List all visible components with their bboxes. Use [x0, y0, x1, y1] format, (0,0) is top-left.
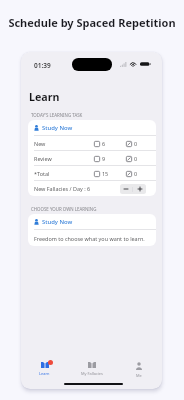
staticText: TODAY'S LEARNING TASK [31, 112, 83, 118]
button[interactable]: Decrease [120, 184, 132, 194]
staticText: My Fallacies [81, 371, 103, 376]
button[interactable]: My Fallacies [68, 358, 115, 380]
staticText: 0 [134, 155, 138, 162]
staticText: 0 [134, 170, 138, 177]
staticText: Schedule by Spaced Repetition [8, 15, 176, 30]
staticText: 01:39 [34, 61, 51, 70]
staticText: Study Now [42, 124, 73, 132]
staticText: CHOOSE YOUR OWN LEARNING [31, 206, 97, 212]
staticText: Freedom to choose what you want to learn… [34, 235, 145, 242]
button[interactable]: Increase [133, 184, 146, 194]
staticText: 15 [102, 170, 109, 177]
staticText: Learn [29, 90, 60, 105]
button[interactable]: Learn [21, 358, 68, 380]
button[interactable]: Study Now [28, 214, 156, 229]
staticText: 9 [102, 155, 106, 162]
button[interactable]: Study Now [28, 120, 156, 135]
staticText: Review [34, 155, 52, 162]
staticText: *Total [34, 170, 50, 177]
staticText: Study Now [42, 218, 73, 226]
staticText: Learn [39, 371, 50, 376]
staticText: 6 [102, 140, 106, 147]
staticText: 0 [134, 140, 138, 147]
staticText: New Fallacies / Day : 6 [34, 185, 91, 192]
staticText: Me [136, 373, 142, 378]
staticText: New [34, 140, 46, 147]
button[interactable]: Me [115, 358, 162, 380]
